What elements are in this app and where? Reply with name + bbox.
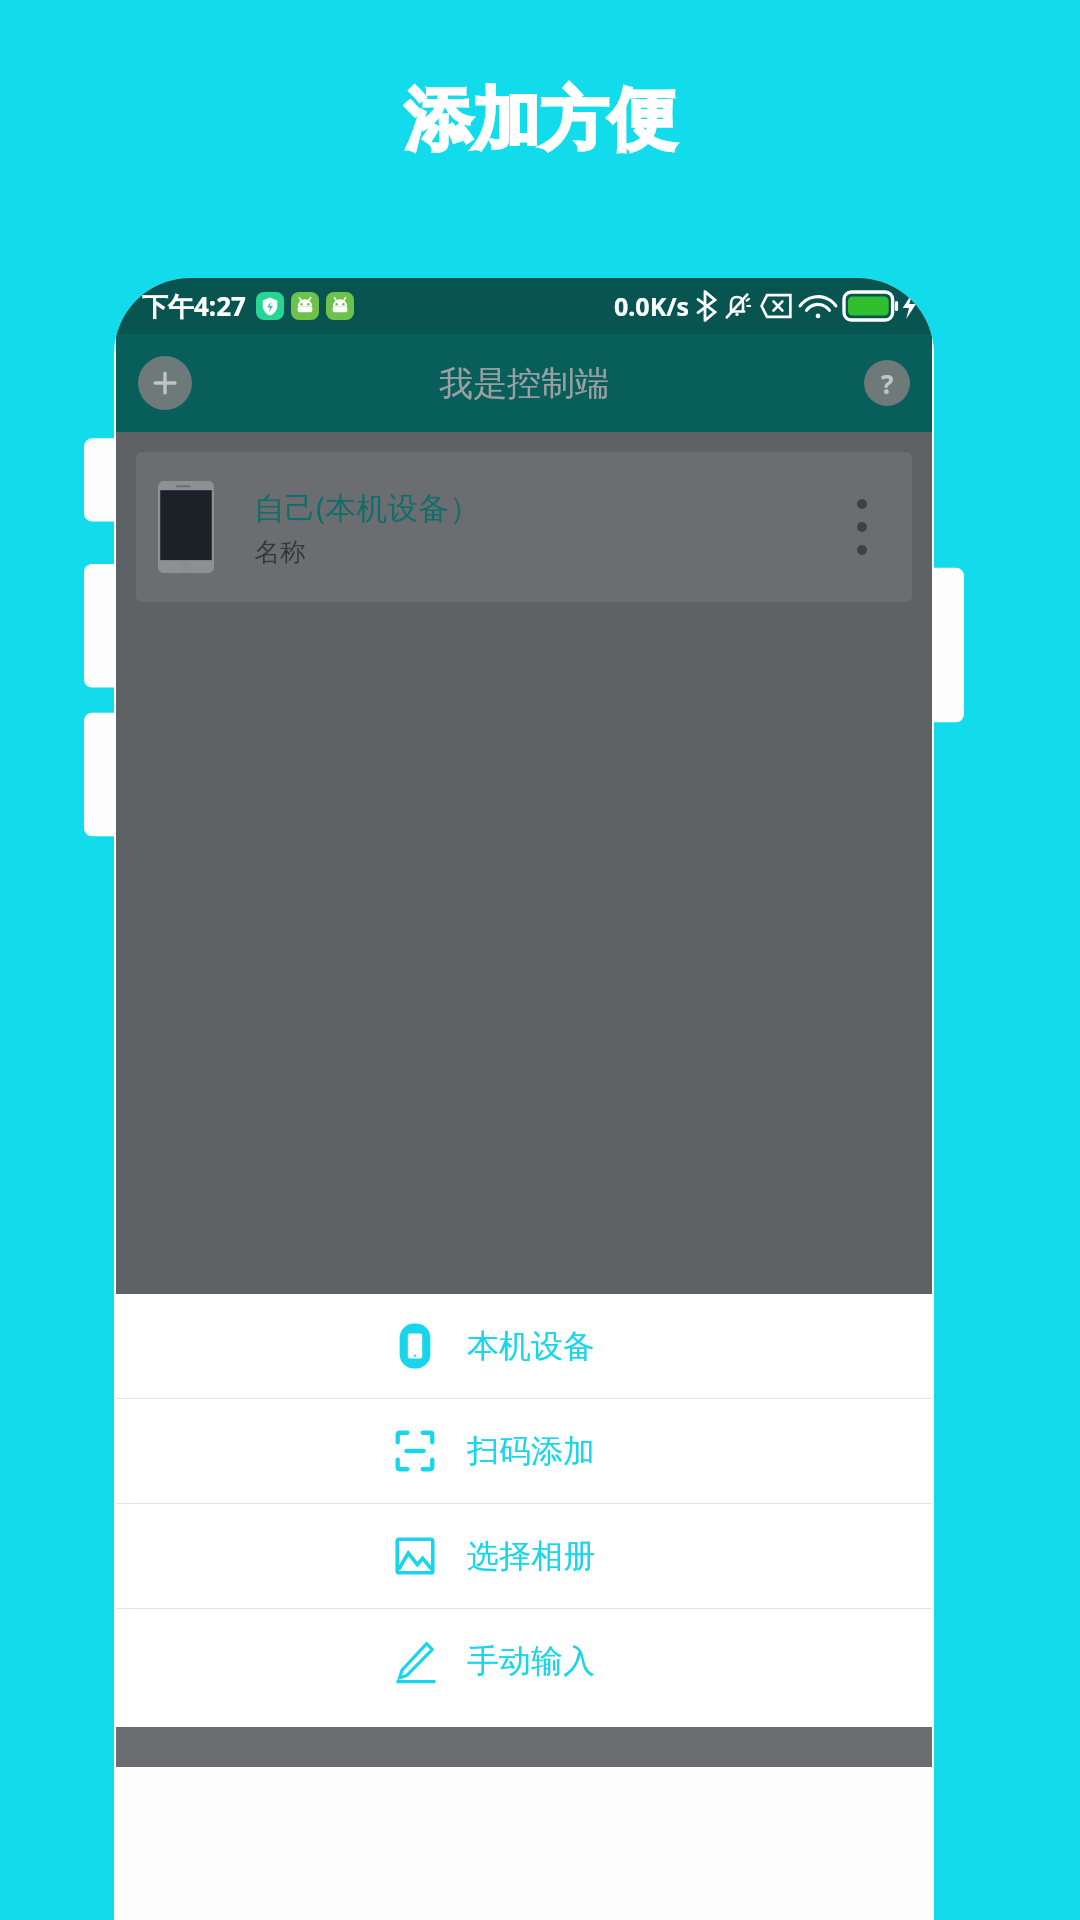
button[interactable]: 自己(本机设备） [136,452,912,602]
staticText: 添加方便 [404,78,676,164]
staticText: 自己(本机设备） [254,486,481,528]
staticText: ? [881,366,894,401]
staticText: 0.0K/s [614,289,690,323]
staticText: 我是控制端 [439,362,609,405]
button[interactable]: 手动输入 [116,1609,932,1713]
button[interactable]: 选择相册 [116,1504,932,1608]
button[interactable]: Help [864,360,910,406]
button[interactable]: 本机设备 [116,1294,932,1398]
button[interactable]: 扫码添加 [116,1399,932,1503]
button[interactable]: More options [834,484,890,570]
staticText: 扫码添加 [467,1431,595,1471]
button[interactable]: Add device [138,356,192,410]
staticText: 选择相册 [467,1536,595,1576]
staticText: 手动输入 [467,1641,595,1681]
staticText: 下午4:27 [142,288,246,324]
staticText: 名称 [254,536,306,569]
staticText: 本机设备 [467,1326,595,1366]
